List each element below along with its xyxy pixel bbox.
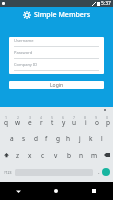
staticText: u bbox=[72, 118, 77, 127]
staticText: Simple Members bbox=[34, 10, 91, 20]
button[interactable]: u bbox=[69, 117, 80, 127]
staticText: j bbox=[79, 134, 81, 143]
staticText: q bbox=[4, 118, 8, 127]
button[interactable]: q bbox=[0, 117, 12, 127]
button[interactable]: w bbox=[12, 117, 24, 127]
staticText: g bbox=[56, 134, 60, 143]
staticText: b bbox=[67, 151, 71, 160]
button[interactable]: x bbox=[24, 150, 36, 160]
button[interactable]: v bbox=[49, 150, 62, 160]
staticText: a bbox=[10, 134, 14, 143]
staticText: o bbox=[95, 118, 99, 127]
button[interactable]: y bbox=[58, 117, 69, 127]
button[interactable]: r bbox=[36, 117, 47, 127]
staticText: p bbox=[106, 118, 110, 127]
button[interactable]: n bbox=[75, 150, 88, 160]
staticText: i bbox=[85, 118, 87, 127]
staticText: 8 bbox=[84, 115, 87, 120]
button[interactable]: Back bbox=[0, 182, 37, 200]
button[interactable]: i bbox=[80, 117, 91, 127]
button[interactable]: p bbox=[102, 117, 113, 127]
button[interactable]: Password bbox=[14, 50, 99, 59]
staticText: . bbox=[98, 168, 100, 176]
staticText: f bbox=[45, 134, 48, 143]
button[interactable]: l bbox=[96, 133, 107, 143]
button[interactable]: g bbox=[52, 133, 63, 143]
staticText: Company ID bbox=[14, 62, 38, 67]
staticText: c bbox=[41, 151, 45, 160]
button[interactable]: t bbox=[47, 117, 58, 127]
staticText: 2 bbox=[17, 115, 20, 120]
staticText: 4 bbox=[40, 115, 43, 120]
button[interactable]: h bbox=[63, 133, 74, 143]
staticText: x bbox=[28, 151, 32, 160]
staticText: 3 bbox=[29, 115, 32, 120]
button[interactable]: a bbox=[6, 133, 18, 143]
staticText: 5:37 bbox=[101, 0, 111, 7]
staticText: 1 bbox=[5, 115, 8, 120]
staticText: r bbox=[40, 118, 43, 127]
staticText: s bbox=[22, 134, 26, 143]
staticText: 7 bbox=[73, 115, 76, 120]
button[interactable]: . bbox=[95, 167, 102, 177]
staticText: Username bbox=[14, 38, 34, 43]
button[interactable]: s bbox=[18, 133, 30, 143]
staticText: k bbox=[89, 134, 93, 143]
staticText: y bbox=[62, 118, 66, 127]
button[interactable]: Home bbox=[37, 182, 75, 200]
staticText: l bbox=[101, 134, 103, 143]
button[interactable]: o bbox=[91, 117, 102, 127]
staticText: h bbox=[66, 134, 71, 143]
staticText: 6 bbox=[62, 115, 65, 120]
button[interactable]: d bbox=[30, 133, 41, 143]
staticText: ?123 bbox=[4, 170, 12, 175]
button[interactable]: Company ID bbox=[14, 62, 99, 71]
staticText: Login bbox=[50, 82, 64, 89]
button[interactable]: f bbox=[41, 133, 52, 143]
button[interactable]: Shift bbox=[0, 150, 12, 160]
button[interactable]: Enter bbox=[102, 168, 110, 176]
button[interactable]: Recent apps bbox=[75, 182, 113, 200]
staticText: w bbox=[15, 118, 21, 127]
staticText: Password bbox=[14, 50, 33, 55]
button[interactable]: j bbox=[74, 133, 85, 143]
button[interactable]: Backspace bbox=[101, 150, 113, 160]
staticText: 5 bbox=[51, 115, 54, 120]
staticText: v bbox=[54, 151, 58, 160]
staticText: n bbox=[79, 151, 84, 160]
staticText: d bbox=[34, 134, 38, 143]
staticText: e bbox=[28, 118, 32, 127]
staticText: 0 bbox=[106, 115, 109, 120]
staticText: t bbox=[51, 118, 54, 127]
button[interactable]: Username bbox=[14, 38, 99, 47]
staticText: m bbox=[91, 151, 98, 160]
button[interactable]: m bbox=[88, 150, 101, 160]
button[interactable]: b bbox=[62, 150, 75, 160]
button[interactable]: c bbox=[36, 150, 49, 160]
staticText: z bbox=[16, 151, 20, 160]
button[interactable]: Login bbox=[9, 81, 104, 89]
button[interactable]: z bbox=[12, 150, 24, 160]
button[interactable]: e bbox=[24, 117, 36, 127]
button[interactable]: ?123 bbox=[2, 167, 13, 177]
staticText: 9 bbox=[95, 115, 98, 120]
button[interactable]: k bbox=[85, 133, 96, 143]
